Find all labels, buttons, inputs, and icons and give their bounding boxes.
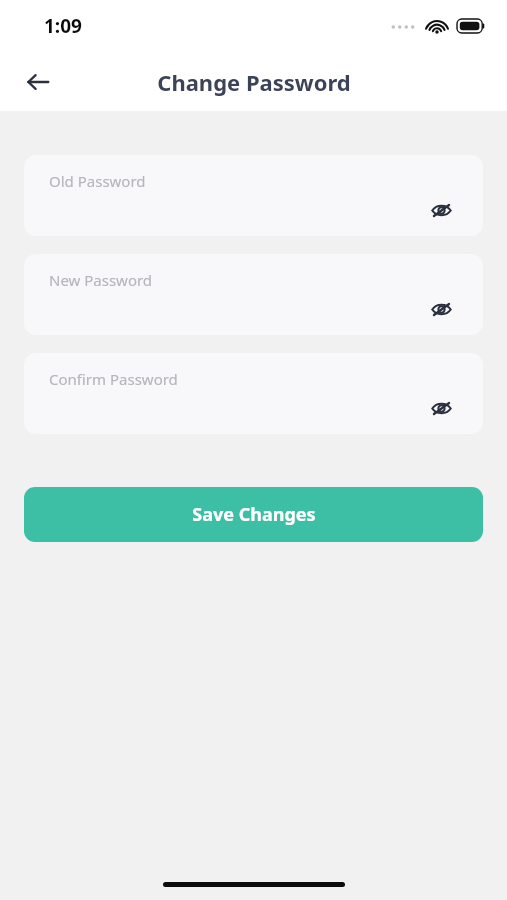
button[interactable]: Confirm Password (24, 353, 483, 434)
button[interactable]: Old Password (24, 155, 483, 236)
staticText: Confirm Password (49, 369, 178, 389)
button[interactable]: Toggle password visibility (421, 289, 461, 329)
staticText: Old Password (49, 171, 146, 191)
staticText: Change Password (157, 67, 351, 97)
button[interactable]: Toggle password visibility (421, 388, 461, 428)
button[interactable]: New Password (24, 254, 483, 335)
staticText: New Password (49, 270, 153, 290)
button[interactable]: Toggle password visibility (421, 190, 461, 230)
button[interactable]: Back (14, 58, 62, 106)
staticText: 1:09 (44, 13, 82, 39)
staticText: Save Changes (192, 502, 316, 527)
button[interactable]: Save Changes (24, 487, 483, 542)
